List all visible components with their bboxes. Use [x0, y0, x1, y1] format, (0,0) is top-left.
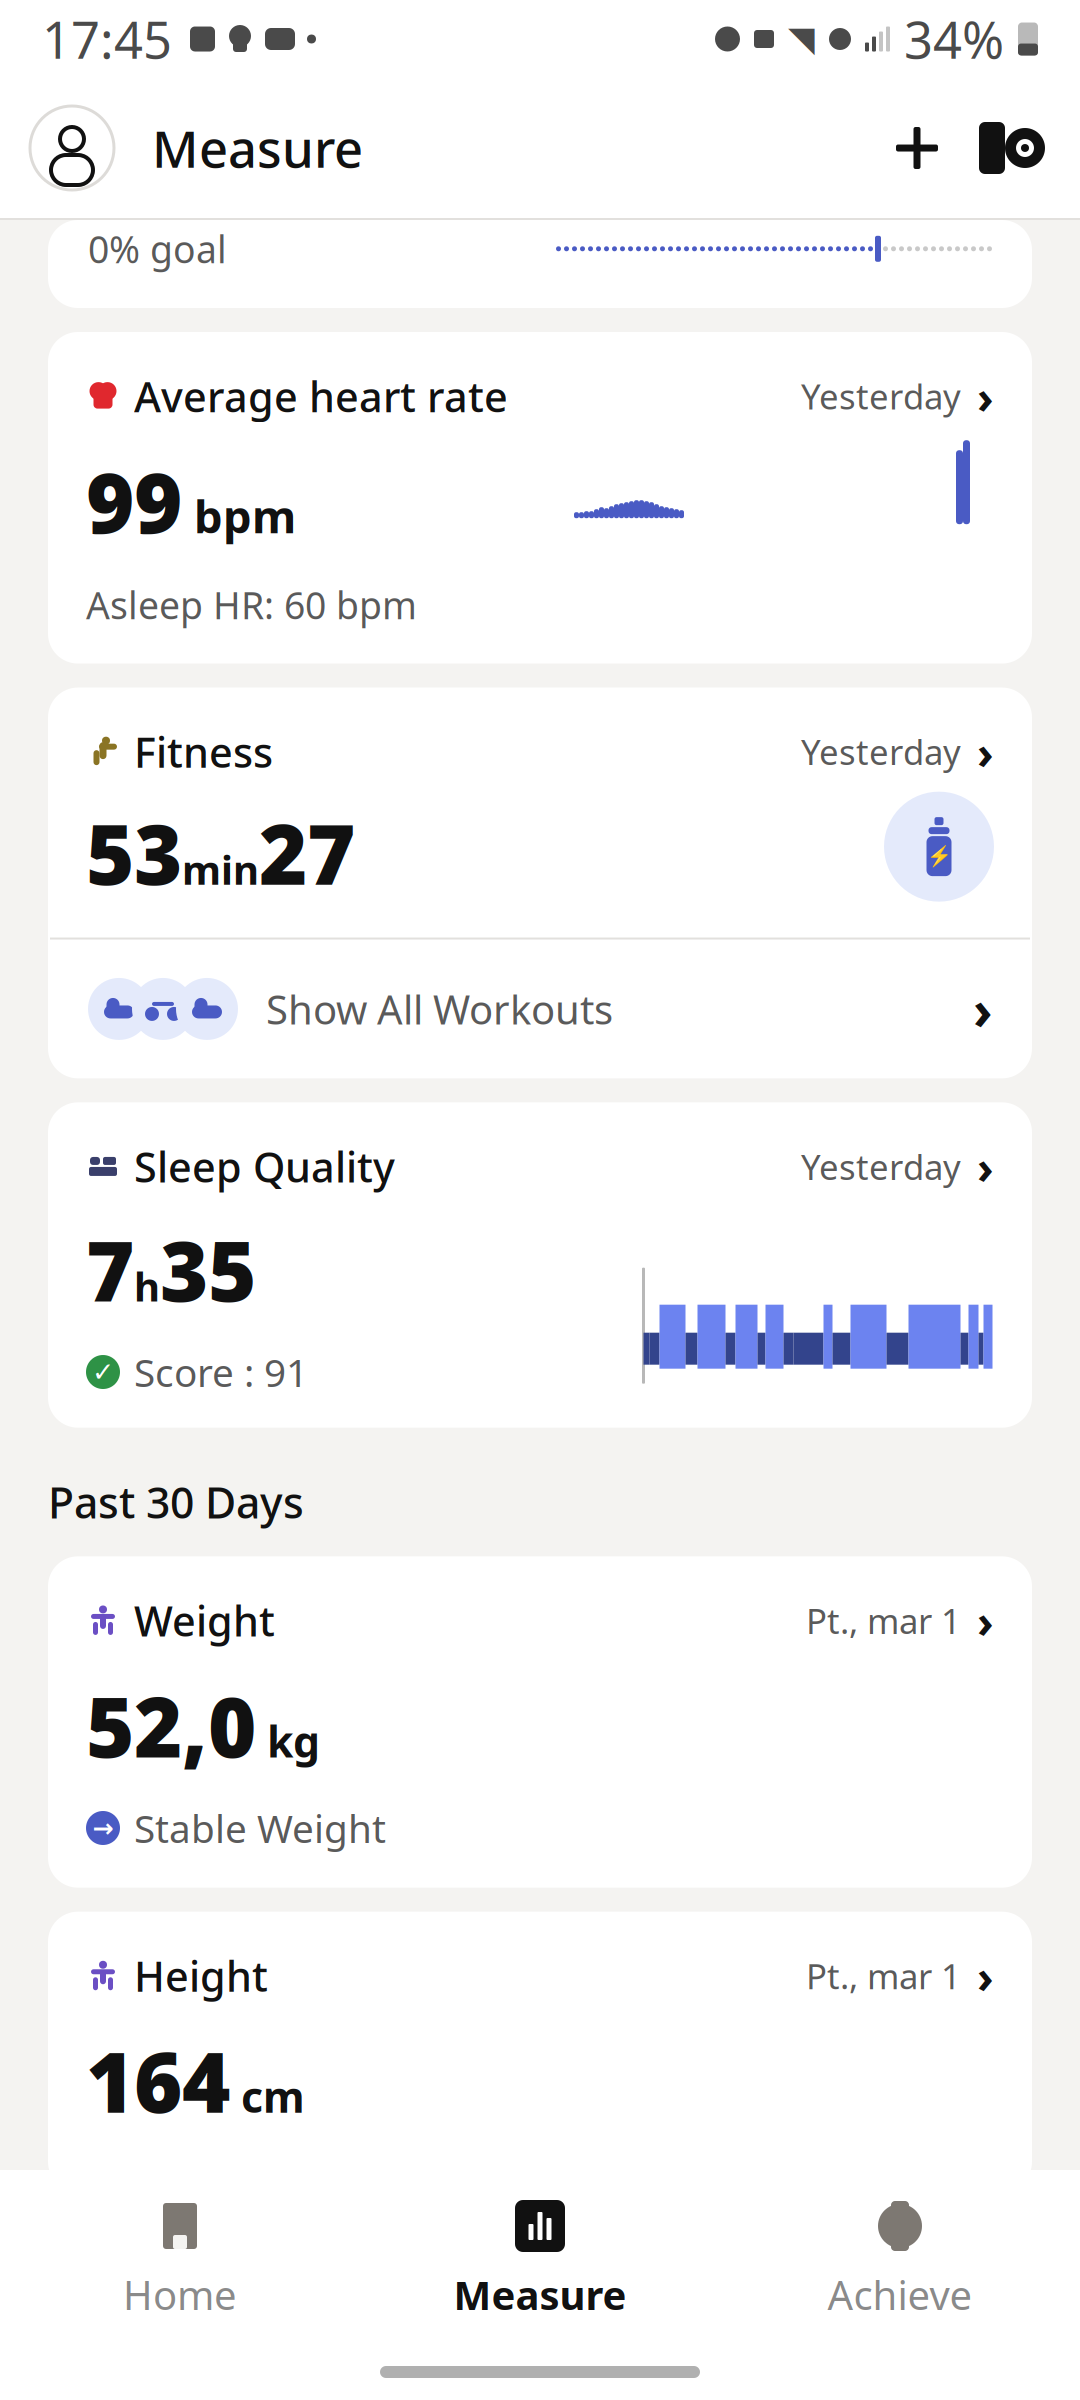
staticText: 0% goal — [88, 224, 227, 274]
staticText: 99 — [86, 446, 182, 556]
staticText: › — [977, 1946, 994, 2006]
staticText: Height — [134, 1948, 268, 2003]
staticText: Yesterday — [801, 729, 961, 775]
staticText: 35 — [160, 1215, 256, 1324]
staticText: bpm — [182, 485, 296, 546]
staticText: ◥ — [788, 19, 815, 59]
staticText: h — [134, 1259, 160, 1312]
staticText: › — [977, 722, 994, 782]
staticText: Sleep Quality — [134, 1139, 395, 1194]
staticText: 17:45 — [42, 5, 172, 73]
button[interactable]: 0% goal — [48, 220, 1032, 308]
staticText: Fitness — [134, 724, 273, 779]
staticText: Score : 91 — [134, 1346, 308, 1398]
button[interactable]: Sleep Quality — [48, 1102, 1032, 1428]
button[interactable]: Weight — [48, 1556, 1032, 1888]
button[interactable]: Average heart rate — [48, 332, 1032, 664]
staticText: Stable Weight — [134, 1802, 386, 1854]
staticText: 27 — [259, 798, 355, 908]
button[interactable]: Connected watch — [974, 113, 1050, 183]
staticText: min — [182, 843, 259, 896]
staticText: ✓ — [92, 1357, 114, 1387]
staticText: cm — [230, 2068, 305, 2125]
staticText: Past 30 Days — [48, 1474, 304, 1530]
staticText: Measure — [453, 2268, 626, 2321]
staticText: 164 — [86, 2026, 230, 2136]
staticText: Yesterday — [801, 373, 961, 419]
staticText: Pt., mar 1 — [806, 1953, 961, 1999]
staticText: 34% — [904, 5, 1004, 73]
staticText: Achieve — [827, 2268, 972, 2321]
button[interactable]: Height — [48, 1912, 1032, 2192]
staticText: Measure — [152, 114, 363, 182]
staticText: 52,0 — [86, 1670, 256, 1780]
staticText: → — [92, 1814, 113, 1842]
staticText: › — [973, 973, 992, 1044]
staticText: Asleep HR: 60 bpm — [86, 580, 417, 630]
staticText: › — [977, 1590, 994, 1650]
button[interactable]: Show All Workouts — [48, 939, 1032, 1078]
button[interactable]: Home — [0, 2200, 360, 2321]
staticText: ⚡ — [926, 845, 951, 868]
staticText: Home — [123, 2268, 237, 2321]
staticText: kg — [256, 1713, 320, 1769]
staticText: 7 — [86, 1215, 134, 1324]
staticText: Show All Workouts — [266, 982, 613, 1035]
button[interactable]: Profile — [30, 106, 114, 190]
staticText: Yesterday — [801, 1143, 961, 1189]
staticText: Pt., mar 1 — [806, 1597, 961, 1643]
staticText: 53 — [86, 798, 182, 908]
button[interactable]: Measure — [360, 2200, 720, 2321]
button[interactable]: Add — [882, 113, 952, 183]
button[interactable]: Achieve — [720, 2200, 1080, 2321]
staticText: Average heart rate — [134, 369, 508, 424]
staticText: Weight — [134, 1593, 275, 1648]
staticText: › — [977, 366, 994, 426]
button[interactable]: Fitness — [48, 688, 1032, 938]
staticText: › — [977, 1136, 994, 1197]
